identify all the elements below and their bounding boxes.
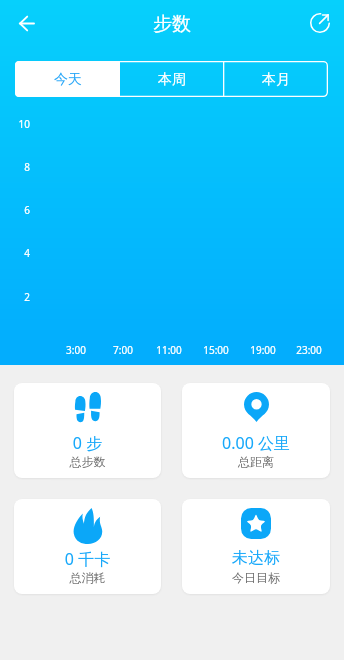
button[interactable]: 0 步 <box>14 383 161 478</box>
staticText: 步数 <box>153 12 191 36</box>
staticText: 今日目标 <box>182 570 330 585</box>
staticText: 8 <box>6 160 30 174</box>
button[interactable]: 未达标 <box>182 499 330 594</box>
staticText: 总距离 <box>182 454 330 469</box>
staticText: 3:00 <box>56 343 96 357</box>
staticText: 0.00 公里 <box>182 432 330 454</box>
button[interactable]: 今天 <box>15 61 120 97</box>
button[interactable]: 0.00 公里 <box>182 383 330 478</box>
staticText: 6 <box>6 203 30 217</box>
staticText: 总消耗 <box>14 570 161 585</box>
staticText: 4 <box>6 246 30 260</box>
staticText: 本月 <box>262 71 290 89</box>
button[interactable]: 本月 <box>224 61 328 97</box>
staticText: 未达标 <box>182 548 330 568</box>
staticText: 2 <box>6 290 30 304</box>
button[interactable]: 0 千卡 <box>14 499 161 594</box>
button[interactable]: 本周 <box>120 61 224 97</box>
button[interactable]: Back <box>10 6 44 40</box>
staticText: 11:00 <box>149 343 189 357</box>
staticText: 19:00 <box>243 343 283 357</box>
staticText: 今天 <box>54 71 82 89</box>
staticText: 总步数 <box>14 454 161 469</box>
staticText: 0 步 <box>14 432 161 454</box>
staticText: 0 千卡 <box>14 548 161 570</box>
staticText: 10 <box>6 117 30 131</box>
staticText: 23:00 <box>289 343 329 357</box>
staticText: 15:00 <box>196 343 236 357</box>
button[interactable]: Share <box>304 7 336 39</box>
staticText: 本周 <box>158 71 186 89</box>
staticText: 7:00 <box>103 343 143 357</box>
